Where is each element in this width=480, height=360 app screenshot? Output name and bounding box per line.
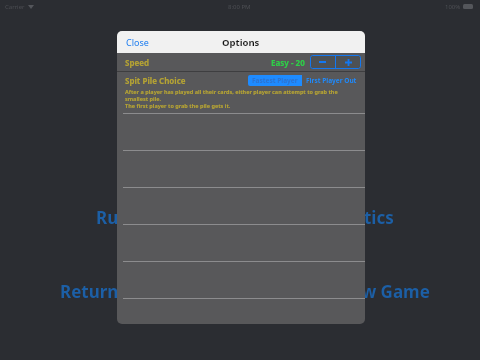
- staticText: Options: [222, 36, 260, 49]
- staticText: Close: [126, 36, 149, 48]
- button[interactable]: Close: [117, 31, 158, 53]
- staticText: Easy - 20: [271, 57, 305, 68]
- staticText: 100%: [445, 3, 461, 11]
- button[interactable]: First Player Out: [302, 75, 361, 86]
- button[interactable]: Rules: [96, 206, 142, 229]
- staticText: New Game: [338, 280, 430, 303]
- button[interactable]: Spit Pile Choice: [117, 72, 365, 88]
- button[interactable]: Return: [60, 280, 119, 303]
- button[interactable]: Increase speed: [336, 55, 361, 69]
- staticText: Spit Pile Choice: [125, 75, 186, 86]
- staticText: Fastest Player: [252, 76, 298, 85]
- button[interactable]: Speed: [117, 53, 365, 71]
- button[interactable]: Fastest Player: [248, 75, 302, 86]
- staticText: The first player to grab the pile gets i…: [125, 102, 231, 109]
- staticText: After a player has played all their card…: [125, 88, 359, 102]
- button[interactable]: New Game: [338, 280, 430, 303]
- staticText: Speed: [125, 57, 150, 68]
- button[interactable]: Statistics: [316, 206, 394, 229]
- staticText: Rules: [96, 206, 142, 229]
- staticText: Statistics: [316, 206, 394, 229]
- staticText: Carrier: [5, 3, 25, 11]
- staticText: 8:00 PM: [228, 3, 251, 11]
- staticText: First Player Out: [306, 76, 357, 85]
- button[interactable]: Decrease speed: [310, 55, 335, 69]
- staticText: Return: [60, 280, 119, 303]
